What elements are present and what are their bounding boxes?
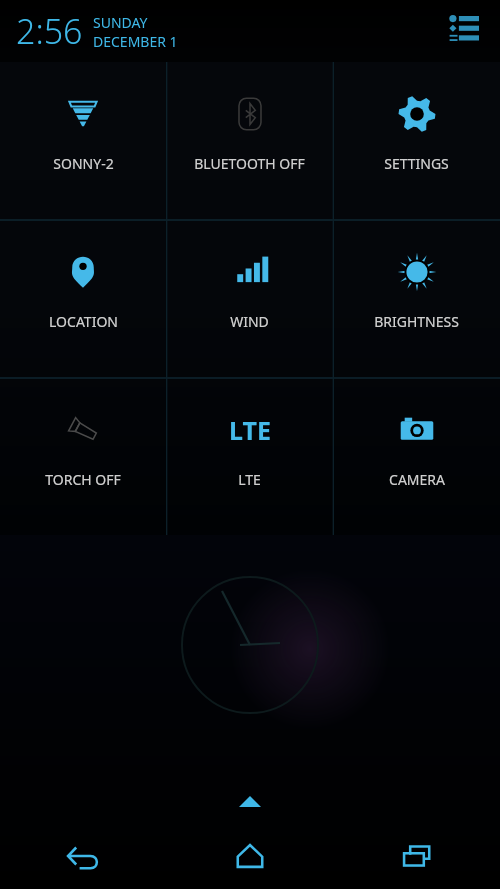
- button[interactable]: Wi-Fi: [0, 62, 166, 220]
- button[interactable]: Expand: [0, 780, 500, 822]
- staticText: LOCATION: [49, 312, 118, 331]
- button[interactable]: Camera: [333, 378, 500, 535]
- staticText: WIND: [230, 312, 269, 331]
- button[interactable]: Settings: [333, 62, 500, 220]
- staticText: 2:56: [16, 8, 83, 54]
- staticText: BRIGHTNESS: [374, 312, 459, 331]
- staticText: CAMERA: [389, 470, 445, 489]
- staticText: TORCH OFF: [45, 470, 121, 489]
- staticText: LTE: [229, 413, 271, 447]
- button[interactable]: Home: [166, 822, 333, 889]
- staticText: DECEMBER 1: [93, 32, 178, 51]
- staticText: BLUETOOTH OFF: [194, 154, 305, 173]
- button[interactable]: Brightness: [333, 220, 500, 378]
- button[interactable]: Notifications list: [442, 9, 486, 53]
- staticText: SUNDAY: [93, 13, 148, 32]
- button[interactable]: Bluetooth: [166, 62, 333, 220]
- staticText: SONNY-2: [53, 154, 114, 173]
- button[interactable]: Back: [0, 822, 166, 889]
- button[interactable]: LTE: [166, 378, 333, 535]
- staticText: LTE: [238, 470, 261, 489]
- staticText: SETTINGS: [384, 154, 449, 173]
- button[interactable]: Torch: [0, 378, 166, 535]
- button[interactable]: Recent apps: [333, 822, 500, 889]
- button[interactable]: Wind: [166, 220, 333, 378]
- button[interactable]: Location: [0, 220, 166, 378]
